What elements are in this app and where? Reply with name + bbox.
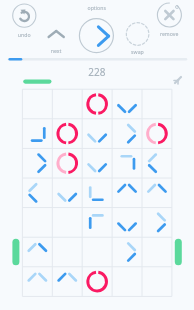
button[interactable]: Options	[79, 4, 115, 52]
button[interactable]: Remove	[157, 2, 183, 36]
button[interactable]: Game board	[22, 89, 172, 297]
button[interactable]: Swap	[125, 22, 151, 54]
button[interactable]: Undo	[12, 2, 38, 36]
button[interactable]: Next	[44, 26, 70, 52]
button[interactable]: Boost	[169, 74, 187, 90]
